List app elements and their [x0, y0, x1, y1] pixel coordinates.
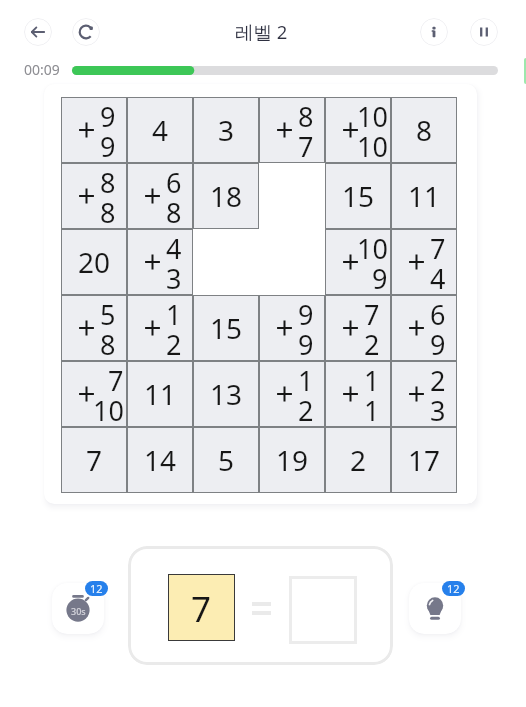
button[interactable]: 14	[127, 427, 193, 493]
staticText: 8	[298, 98, 314, 135]
staticText: 10	[357, 230, 388, 267]
staticText: 9	[100, 98, 116, 135]
button[interactable]: 7	[61, 361, 127, 427]
button[interactable]: Hint	[409, 583, 461, 634]
staticText: 8	[100, 194, 116, 223]
button[interactable]: 15	[193, 295, 259, 361]
button[interactable]: 7	[168, 574, 235, 641]
staticText: 8	[100, 164, 116, 201]
button[interactable]: 10	[325, 229, 391, 295]
button[interactable]: 1	[127, 295, 193, 361]
staticText: 4	[166, 230, 182, 267]
staticText: 10	[357, 98, 388, 135]
button[interactable]: 7	[391, 229, 457, 295]
button[interactable]: 2	[325, 427, 391, 493]
staticText: 7	[364, 296, 380, 333]
button[interactable]: 13	[193, 361, 259, 427]
staticText: 9	[372, 260, 388, 289]
staticText: 12	[90, 581, 103, 596]
button[interactable]: 1	[325, 361, 391, 427]
staticText: 6	[430, 296, 446, 333]
button[interactable]: 11	[391, 163, 457, 229]
button[interactable]: 10	[325, 97, 391, 163]
button[interactable]: 6	[127, 163, 193, 229]
button[interactable]: 5	[61, 295, 127, 361]
button[interactable]: Back	[24, 18, 52, 46]
button[interactable]: 8	[391, 97, 457, 163]
staticText: 3	[166, 260, 182, 289]
staticText: 19	[276, 441, 309, 479]
staticText: 14	[144, 441, 177, 479]
staticText: 5	[100, 296, 116, 333]
staticText: 5	[218, 441, 235, 479]
button[interactable]: Restart	[72, 18, 100, 46]
button[interactable]: 4	[127, 97, 193, 163]
staticText: 3	[218, 111, 235, 149]
staticText: 30s	[71, 605, 86, 617]
staticText: 1	[364, 392, 380, 421]
staticText: 13	[210, 375, 243, 413]
staticText: 18	[210, 177, 243, 215]
button[interactable]: Info	[420, 18, 448, 46]
staticText: 7	[86, 441, 103, 479]
staticText: 2	[166, 326, 182, 355]
button[interactable]: 7	[61, 427, 127, 493]
staticText: 4	[430, 260, 446, 289]
button[interactable]: 20	[61, 229, 127, 295]
staticText: 15	[342, 177, 375, 215]
button[interactable]: 4	[127, 229, 193, 295]
staticText: 9	[298, 326, 314, 355]
button[interactable]: Add 30 seconds	[52, 583, 104, 634]
staticText: 7	[191, 585, 212, 633]
staticText: 1	[166, 296, 182, 333]
staticText: 12	[447, 581, 460, 596]
staticText: 11	[408, 177, 441, 215]
staticText: 7	[108, 362, 124, 399]
button[interactable]: 19	[259, 427, 325, 493]
staticText: 10	[357, 128, 388, 157]
button[interactable]: 8	[61, 163, 127, 229]
button[interactable]: 17	[391, 427, 457, 493]
staticText: 7	[430, 230, 446, 267]
staticText: 7	[298, 128, 314, 157]
button[interactable]: 2	[391, 361, 457, 427]
button[interactable]: 3	[193, 97, 259, 163]
button[interactable]: 5	[193, 427, 259, 493]
staticText: 9	[430, 326, 446, 355]
button[interactable]: 11	[127, 361, 193, 427]
button[interactable]: Answer slot	[289, 576, 357, 644]
staticText: 8	[100, 326, 116, 355]
staticText: 10	[93, 392, 124, 421]
staticText: 2	[298, 392, 314, 421]
button[interactable]: 7	[128, 546, 393, 665]
staticText: 2	[350, 441, 367, 479]
staticText: 1	[364, 362, 380, 399]
button[interactable]: 15	[325, 163, 391, 229]
button[interactable]: 9	[61, 97, 127, 163]
staticText: 2	[430, 362, 446, 399]
button[interactable]: 6	[391, 295, 457, 361]
staticText: 00:09	[24, 60, 60, 79]
staticText: 3	[430, 392, 446, 421]
staticText: 1	[298, 362, 314, 399]
staticText: 17	[408, 441, 441, 479]
staticText: 20	[78, 243, 111, 281]
button[interactable]: 9	[259, 295, 325, 361]
staticText: 9	[298, 296, 314, 333]
staticText: 4	[152, 111, 169, 149]
button[interactable]: 1	[259, 361, 325, 427]
staticText: 9	[100, 128, 116, 157]
staticText: 6	[166, 164, 182, 201]
staticText: 2	[364, 326, 380, 355]
staticText: 15	[210, 309, 243, 347]
button[interactable]: 7	[325, 295, 391, 361]
staticText: 8	[166, 194, 182, 223]
button[interactable]: 8	[259, 97, 325, 163]
staticText: 11	[144, 375, 177, 413]
button[interactable]: 18	[193, 163, 259, 229]
staticText: 8	[416, 111, 433, 149]
button[interactable]: Pause	[470, 18, 498, 46]
staticText: 레벨 2	[235, 19, 288, 44]
